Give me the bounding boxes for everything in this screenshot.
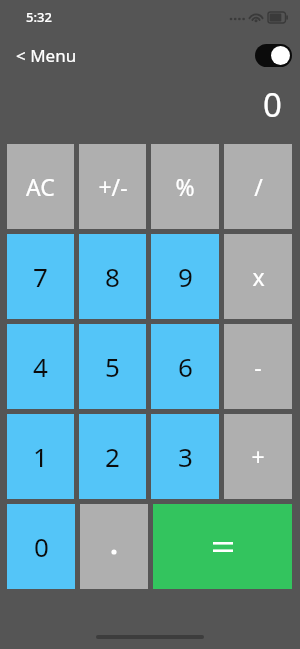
staticText: - — [254, 351, 262, 382]
button[interactable]: + — [224, 414, 292, 499]
button[interactable]: < Menu — [10, 40, 83, 71]
staticText: +/- — [98, 171, 128, 202]
staticText: + — [251, 441, 265, 472]
staticText: 0 — [263, 82, 282, 127]
staticText: x — [252, 261, 265, 292]
button[interactable]: 0 — [7, 504, 75, 589]
staticText: 8 — [105, 259, 120, 294]
button[interactable] — [153, 504, 292, 589]
button[interactable]: AC — [7, 144, 74, 229]
staticText: 5 — [105, 349, 120, 384]
staticText: 7 — [33, 259, 48, 294]
staticText: / — [254, 171, 263, 202]
other: Equals — [153, 504, 292, 589]
staticText: 2 — [105, 439, 120, 474]
button[interactable]: 3 — [151, 414, 219, 499]
button[interactable]: % — [151, 144, 219, 229]
button[interactable] — [80, 504, 148, 589]
button[interactable]: - — [224, 324, 292, 409]
staticText: < Menu — [16, 44, 77, 67]
button[interactable]: 8 — [79, 234, 146, 319]
button[interactable]: 7 — [7, 234, 74, 319]
button[interactable]: 9 — [151, 234, 219, 319]
button[interactable]: +/- — [79, 144, 146, 229]
button[interactable]: 6 — [151, 324, 219, 409]
staticText: 6 — [178, 349, 193, 384]
button[interactable]: 1 — [7, 414, 74, 499]
button[interactable]: x — [224, 234, 292, 319]
button[interactable]: 5 — [79, 324, 146, 409]
button[interactable]: 4 — [7, 324, 74, 409]
button[interactable]: / — [224, 144, 292, 229]
button[interactable]: Toggle — [255, 44, 292, 67]
staticText: 0 — [34, 529, 49, 564]
staticText: 3 — [178, 439, 193, 474]
staticText: 1 — [33, 439, 48, 474]
staticText: AC — [26, 171, 55, 202]
staticText: 5:32 — [26, 8, 52, 26]
staticText: 4 — [33, 349, 48, 384]
button[interactable]: 2 — [79, 414, 146, 499]
staticText: 9 — [178, 259, 193, 294]
staticText: % — [175, 171, 195, 202]
